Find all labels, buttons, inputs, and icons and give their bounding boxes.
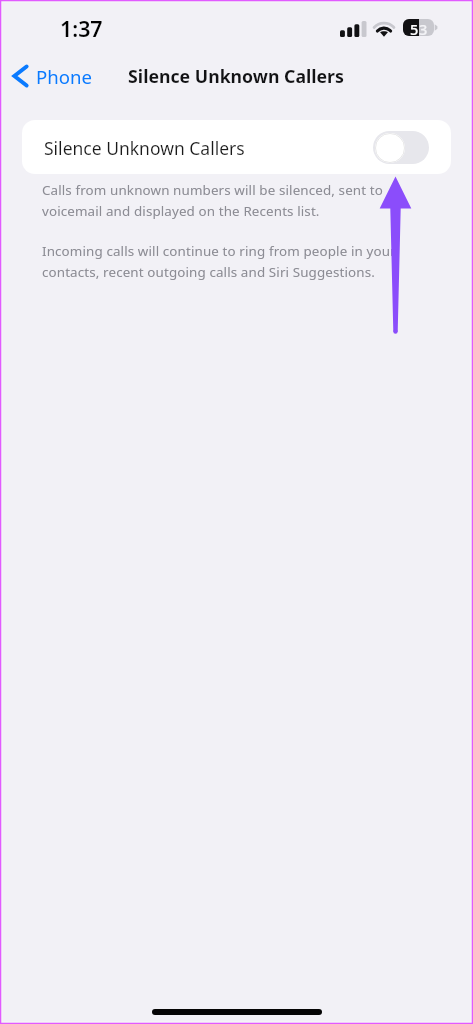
button[interactable]: Silence Unknown Callers toggle <box>373 131 429 164</box>
staticText: Phone <box>36 64 92 89</box>
staticText: 5 <box>410 19 419 36</box>
staticText: Silence Unknown Callers <box>128 64 344 88</box>
button[interactable]: Silence Unknown Callers <box>22 120 451 174</box>
staticText: Incoming calls will continue to ring fro… <box>42 242 398 281</box>
button[interactable]: Back to Phone <box>10 60 104 92</box>
staticText: 3 <box>419 19 428 36</box>
staticText: 1:37 <box>60 14 103 43</box>
staticText: Calls from unknown numbers will be silen… <box>42 181 398 220</box>
staticText: Silence Unknown Callers <box>44 136 245 160</box>
